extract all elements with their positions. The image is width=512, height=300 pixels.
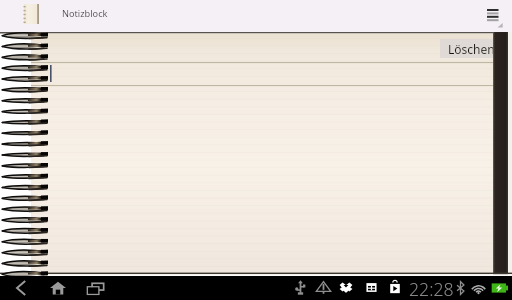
staticText: 22:28 bbox=[409, 276, 455, 300]
staticText: Löschen bbox=[448, 41, 495, 57]
button[interactable]: Recent apps bbox=[78, 276, 112, 300]
button[interactable]: More options bbox=[480, 0, 512, 32]
button[interactable]: Back bbox=[4, 276, 38, 300]
button[interactable]: Löschen bbox=[440, 39, 502, 58]
button[interactable]: Home bbox=[41, 276, 75, 300]
staticText: Notizblock bbox=[62, 7, 108, 20]
